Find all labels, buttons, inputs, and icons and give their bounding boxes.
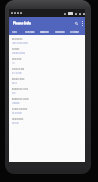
button[interactable]: Refresh Rate <box>9 75 85 85</box>
staticText: Resolution <box>12 37 23 40</box>
staticText: Orientation <box>12 118 24 121</box>
staticText: 1080 x 2400 Pixels <box>12 42 28 45</box>
staticText: CAMERA <box>70 30 79 33</box>
staticText: 60 Hz <box>12 82 17 85</box>
staticText: Screen Timeout <box>12 108 28 111</box>
staticText: MEMORY <box>55 30 65 33</box>
staticText: 6.31 inches <box>12 72 22 75</box>
staticText: 60 Hz <box>12 81 17 84</box>
staticText: Refresh Rate <box>12 78 25 81</box>
staticText: Density <box>12 47 20 50</box>
staticText: CAMERA <box>70 31 79 34</box>
staticText: Adaptive <box>12 102 20 105</box>
staticText: 1.0 <box>12 62 15 65</box>
staticText: 30 Seconds <box>12 112 22 115</box>
staticText: Orientation <box>12 117 24 120</box>
staticText: Portrait <box>12 122 19 125</box>
button[interactable]: BATTERY <box>22 28 37 35</box>
staticText: Screen Timeout <box>12 107 28 110</box>
button[interactable]: FontScale <box>9 55 85 65</box>
staticText: Brightness Level <box>12 88 29 91</box>
staticText: Adaptive <box>12 101 20 104</box>
staticText: 420dpi (XHDPI) <box>12 52 26 55</box>
button[interactable]: Search <box>74 19 79 27</box>
staticText: Phone Info <box>13 21 31 26</box>
staticText: Refresh Rate <box>12 77 25 80</box>
staticText: FontScale <box>12 58 22 61</box>
button[interactable]: Brightness Mode <box>9 95 85 105</box>
staticText: 6.31 inches <box>12 71 22 74</box>
staticText: DISPLAY <box>40 31 49 34</box>
staticText: Brightness Mode <box>12 97 29 100</box>
button[interactable]: Screen Timeout <box>9 105 85 115</box>
button[interactable]: MEMORY <box>52 28 67 35</box>
staticText: Physical Size <box>12 68 25 71</box>
button[interactable]: DISPLAY <box>37 28 52 35</box>
staticText: 1080 x 2400 Pixels <box>12 41 28 44</box>
button[interactable]: Physical Size <box>9 65 85 75</box>
staticText: 24% <box>12 92 16 95</box>
staticText: 24% <box>12 91 16 94</box>
button[interactable]: CPU <box>7 28 22 35</box>
staticText: Portrait <box>12 121 19 124</box>
button[interactable]: Resolution <box>9 35 85 45</box>
staticText: Density <box>12 48 20 51</box>
button[interactable]: Brightness Level <box>9 85 85 95</box>
button[interactable]: CAMERA <box>67 28 82 35</box>
staticText: FontScale <box>12 57 22 60</box>
staticText: Brightness Mode <box>12 98 29 101</box>
staticText: 1.0 <box>12 61 15 64</box>
staticText: BATTERY <box>25 31 35 34</box>
staticText: Physical Size <box>12 67 25 70</box>
staticText: Phone Info <box>13 20 31 25</box>
staticText: BATTERY <box>25 30 35 33</box>
staticText: CPU <box>12 31 17 34</box>
staticText: MEMORY <box>55 31 65 34</box>
staticText: Resolution <box>12 38 23 41</box>
staticText: Brightness Level <box>12 87 29 90</box>
staticText: 420dpi (XHDPI) <box>12 51 26 54</box>
staticText: DISPLAY <box>40 30 49 33</box>
button[interactable]: Orientation <box>9 115 85 125</box>
button[interactable]: Density <box>9 45 85 55</box>
staticText: CPU <box>12 30 17 33</box>
staticText: 30 Seconds <box>12 111 22 114</box>
button[interactable]: More options <box>80 19 84 27</box>
